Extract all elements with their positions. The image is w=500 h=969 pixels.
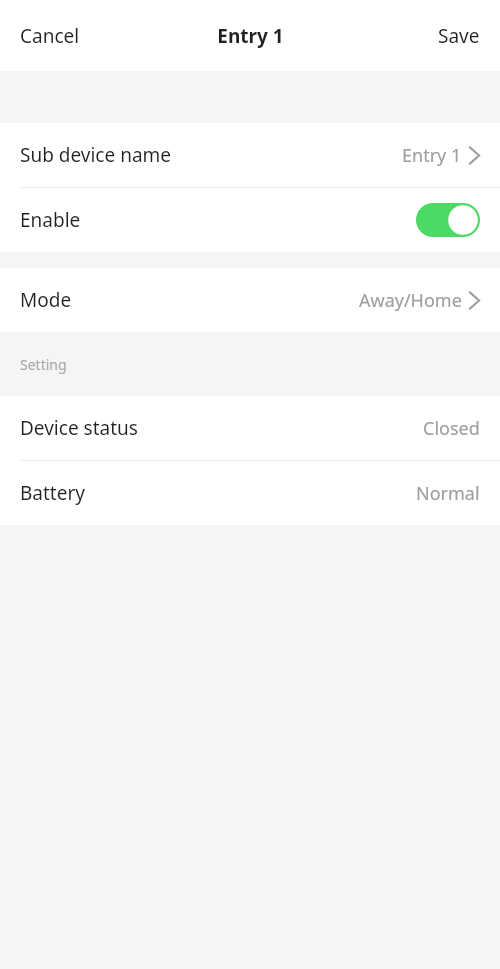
staticText: Enable xyxy=(20,207,81,233)
button[interactable]: Cancel xyxy=(0,15,92,57)
staticText: Setting xyxy=(20,355,67,374)
staticText: Normal xyxy=(416,481,480,506)
staticText: Save xyxy=(438,23,480,49)
button[interactable]: Mode xyxy=(0,268,500,332)
staticText: Cancel xyxy=(20,23,80,49)
staticText: Device status xyxy=(20,415,138,441)
staticText: Sub device name xyxy=(20,142,172,168)
staticText: Entry 1 xyxy=(217,23,284,49)
staticText: Entry 1 xyxy=(402,143,462,168)
button[interactable]: Enable xyxy=(0,188,500,252)
staticText: Battery xyxy=(20,480,85,506)
staticText: Closed xyxy=(423,416,480,441)
button[interactable]: Save xyxy=(426,15,500,57)
button[interactable]: Sub device name xyxy=(0,123,500,187)
button[interactable]: Enable toggle xyxy=(416,203,480,237)
staticText: Mode xyxy=(20,287,72,313)
staticText: Away/Home xyxy=(359,288,462,313)
